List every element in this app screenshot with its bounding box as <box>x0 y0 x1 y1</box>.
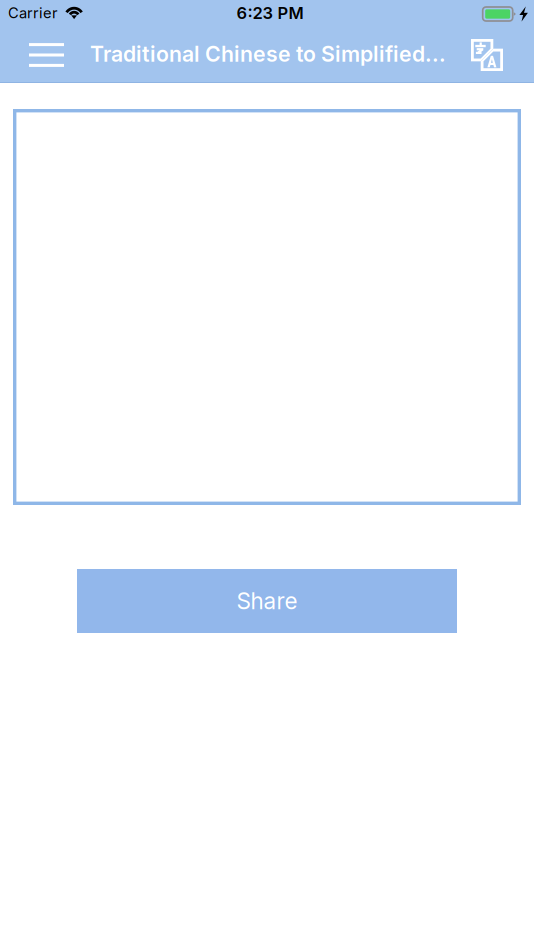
staticText: Traditional Chinese to Simplified... <box>90 41 446 67</box>
staticText: 6:23 PM <box>236 3 303 23</box>
button[interactable]: Share <box>77 569 457 633</box>
staticText: Carrier <box>8 4 58 22</box>
staticText: Share <box>236 587 297 615</box>
button[interactable]: Translate <box>464 28 510 82</box>
button[interactable]: Menu <box>23 28 70 82</box>
